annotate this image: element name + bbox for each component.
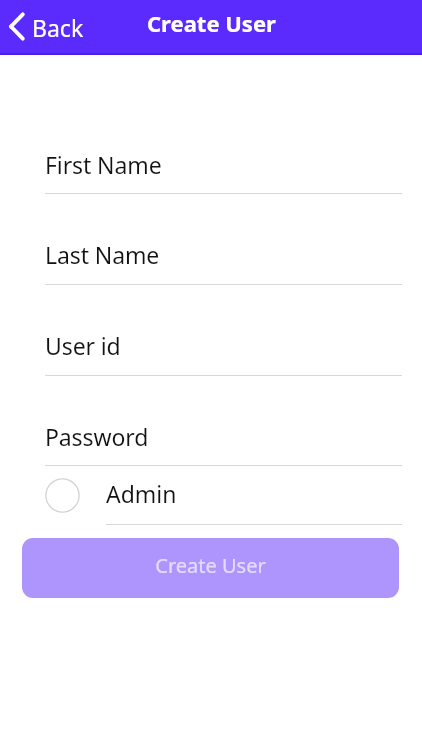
button[interactable]: Admin, unchecked (45, 478, 80, 513)
staticText: Password (45, 421, 149, 452)
button[interactable] (45, 324, 402, 376)
button[interactable]: Admin (106, 478, 402, 525)
staticText: Admin (106, 478, 177, 509)
button[interactable] (45, 143, 402, 194)
staticText: First Name (45, 149, 162, 180)
staticText: Back (32, 12, 84, 43)
staticText: Last Name (45, 239, 160, 270)
staticText: Create User (155, 552, 266, 579)
staticText: Create User (147, 8, 276, 38)
button[interactable] (45, 233, 402, 285)
button[interactable]: Back (0, 0, 84, 55)
staticText: User id (45, 330, 121, 361)
button[interactable] (45, 415, 402, 466)
button[interactable]: Create User (22, 538, 399, 598)
